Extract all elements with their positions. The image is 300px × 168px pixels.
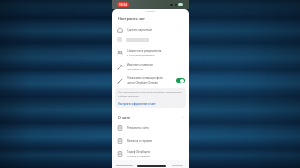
staticText: Групповой чат — [127, 68, 144, 71]
button[interactable]: More options — [181, 116, 184, 119]
staticText: 5 участников добавлено — [127, 54, 155, 57]
staticText: и общие настройки — [118, 95, 139, 98]
staticText: Тариф СберКарты — [127, 150, 151, 154]
button[interactable]: Изменить название — [112, 63, 189, 71]
button[interactable]: Реквизиты счёта — [112, 125, 189, 131]
button[interactable]: Выписка и справки — [112, 138, 189, 144]
staticText: Настроить чат — [118, 16, 145, 21]
staticText: Условия по тарифам — [127, 155, 151, 158]
staticText: Фон чата появится в чате у всех участник… — [118, 91, 182, 94]
button[interactable]: Toggle background animation — [176, 78, 185, 83]
staticText: Выписка и справки — [127, 139, 153, 143]
staticText: О чате — [118, 115, 131, 120]
staticText: Показывать анимации фона — [127, 76, 163, 80]
staticText: Сделать картинкой — [127, 28, 152, 32]
staticText: Совместные уведомления — [127, 49, 162, 53]
button[interactable]: Показывать анимации фона — [112, 76, 189, 85]
button[interactable]: Совместные уведомления — [112, 49, 189, 57]
staticText: чата в Сбербанк Онлайн — [127, 81, 158, 85]
button[interactable]: Настроить оформление в чате — [118, 102, 156, 105]
staticText: Реквизиты счёта — [127, 126, 149, 130]
button[interactable]: Сделать картинкой — [112, 27, 189, 33]
button[interactable]: Тариф СберКарты — [112, 150, 189, 158]
staticText: 15:14 — [119, 3, 128, 7]
staticText: Изменить название — [127, 63, 153, 67]
